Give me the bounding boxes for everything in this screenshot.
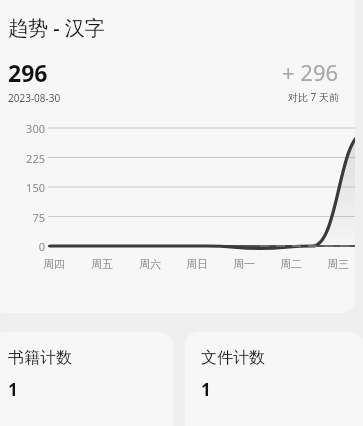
staticText: 周二 bbox=[280, 257, 302, 271]
staticText: 225 bbox=[26, 151, 45, 165]
staticText: 周三 bbox=[327, 257, 349, 271]
button[interactable]: 趋势 - 汉字 bbox=[0, 0, 355, 313]
staticText: 150 bbox=[26, 180, 45, 194]
staticText: 2023-08-30 bbox=[8, 91, 61, 105]
staticText: + 296 bbox=[282, 57, 339, 87]
staticText: 周四 bbox=[43, 257, 65, 271]
staticText: 0 bbox=[38, 239, 45, 253]
staticText: 75 bbox=[32, 210, 45, 224]
staticText: 趋势 - 汉字 bbox=[8, 14, 105, 41]
button[interactable]: 文件计数 bbox=[185, 332, 363, 426]
staticText: 1 bbox=[8, 378, 18, 401]
staticText: 1 bbox=[201, 378, 211, 401]
staticText: 对比 7 天前 bbox=[288, 90, 339, 104]
staticText: 周一 bbox=[233, 257, 255, 271]
staticText: 周日 bbox=[186, 257, 208, 271]
staticText: 文件计数 bbox=[201, 348, 265, 368]
staticText: 书籍计数 bbox=[8, 348, 72, 368]
button[interactable]: 书籍计数 bbox=[0, 332, 173, 426]
staticText: 周五 bbox=[91, 257, 113, 271]
staticText: 300 bbox=[26, 121, 45, 135]
staticText: 296 bbox=[8, 57, 48, 88]
staticText: 周六 bbox=[139, 257, 161, 271]
